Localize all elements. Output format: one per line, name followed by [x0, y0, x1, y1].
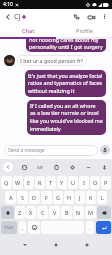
staticText: K [89, 194, 93, 201]
button[interactable]: . [86, 221, 94, 234]
button[interactable]: GIF [35, 162, 45, 172]
button[interactable]: Stickers [19, 162, 29, 172]
button[interactable]: Back [19, 239, 31, 251]
button[interactable]: J [75, 191, 85, 204]
staticText: Y [60, 179, 64, 186]
button[interactable]: ?123 [1, 221, 17, 234]
button[interactable]: Voice input [99, 162, 109, 172]
button[interactable]: Back [2, 11, 13, 22]
staticText: V [53, 209, 57, 216]
staticText: W [15, 179, 21, 186]
staticText: Profile [76, 27, 93, 35]
button[interactable]: Voice message [100, 145, 110, 155]
button[interactable]: Enter [96, 221, 111, 234]
button[interactable]: I bet ur a good person fr? [17, 55, 87, 66]
button[interactable]: Z [15, 206, 25, 219]
button[interactable]: Q [1, 176, 12, 189]
staticText: . [89, 224, 91, 231]
staticText: ?123 [4, 225, 14, 231]
button[interactable]: L [97, 191, 107, 204]
button[interactable]: Expand toolbar [3, 162, 13, 172]
button[interactable]: D [29, 191, 40, 204]
staticText: B [65, 209, 69, 216]
button[interactable]: O [90, 176, 100, 189]
button[interactable]: V [49, 206, 60, 219]
staticText: T [49, 179, 53, 186]
button[interactable]: S [17, 191, 28, 204]
button[interactable]: U [68, 176, 78, 189]
button[interactable]: X [26, 206, 36, 219]
button[interactable]: More options [98, 10, 111, 23]
staticText: CJ [14, 12, 21, 22]
staticText: L [101, 194, 104, 201]
button[interactable]: not noticing cares about my personality … [26, 39, 106, 52]
button[interactable]: P [101, 176, 111, 189]
staticText: N [76, 209, 81, 216]
button[interactable]: It's just that you analyze facial ratios… [25, 70, 106, 97]
staticText: It's just that you analyze facial ratios… [28, 72, 103, 95]
button[interactable]: Shift [1, 206, 14, 219]
staticText: I [83, 179, 85, 186]
button[interactable]: E [24, 176, 34, 189]
staticText: M [88, 209, 93, 216]
staticText: Q [4, 179, 9, 186]
button[interactable]: Home [50, 239, 62, 251]
staticText: A [9, 194, 13, 201]
button[interactable]: B [61, 206, 72, 219]
staticText: F [45, 194, 48, 201]
button[interactable]: N [73, 206, 84, 219]
button[interactable]: A [5, 191, 16, 204]
button[interactable]: Send a message [4, 145, 98, 156]
button[interactable]: K [86, 191, 96, 204]
button[interactable]: , [19, 221, 26, 234]
staticText: not noticing cares about my personality … [29, 39, 103, 51]
button[interactable]: Chat [0, 24, 56, 37]
button[interactable]: G [53, 191, 63, 204]
staticText: H [67, 194, 72, 201]
staticText: If I called you an alt whore as a low ti… [30, 102, 103, 133]
staticText: R [38, 179, 42, 186]
button[interactable]: Y [57, 176, 67, 189]
staticText: Chat [22, 27, 35, 35]
button[interactable]: T [46, 176, 56, 189]
button[interactable]: F [41, 191, 52, 204]
button[interactable]: R [35, 176, 45, 189]
button[interactable]: Recents [81, 239, 93, 251]
staticText: Z [18, 209, 22, 216]
button[interactable]: C [37, 206, 48, 219]
button[interactable]: Settings [67, 162, 77, 172]
staticText: GIF [37, 165, 43, 170]
button[interactable]: Video call [84, 10, 98, 24]
button[interactable]: M [85, 206, 96, 219]
button[interactable]: Backspace [97, 206, 111, 219]
staticText: C [41, 209, 45, 216]
button[interactable]: H [64, 191, 74, 204]
button[interactable]: I [79, 176, 89, 189]
staticText: Send a message [8, 147, 45, 154]
staticText: O [93, 179, 98, 186]
button[interactable]: W [13, 176, 23, 189]
button[interactable]: More [83, 162, 93, 172]
button[interactable]: Profile [56, 24, 112, 37]
staticText: , [22, 224, 24, 231]
staticText: S [21, 194, 25, 201]
staticText: D [32, 194, 37, 201]
button[interactable]: Clipboard [51, 162, 61, 172]
staticText: G [56, 194, 61, 201]
staticText: 4:10 [3, 1, 13, 8]
staticText: P [104, 179, 108, 186]
staticText: U [71, 179, 76, 186]
button[interactable]: Call [70, 10, 84, 24]
staticText: I bet ur a good person fr? [20, 57, 84, 64]
staticText: J [79, 194, 81, 201]
staticText: E [27, 179, 31, 186]
button[interactable]: Emoji [28, 221, 40, 234]
staticText: X [29, 209, 33, 216]
button[interactable]: If I called you an alt whore as a low ti… [27, 100, 106, 135]
